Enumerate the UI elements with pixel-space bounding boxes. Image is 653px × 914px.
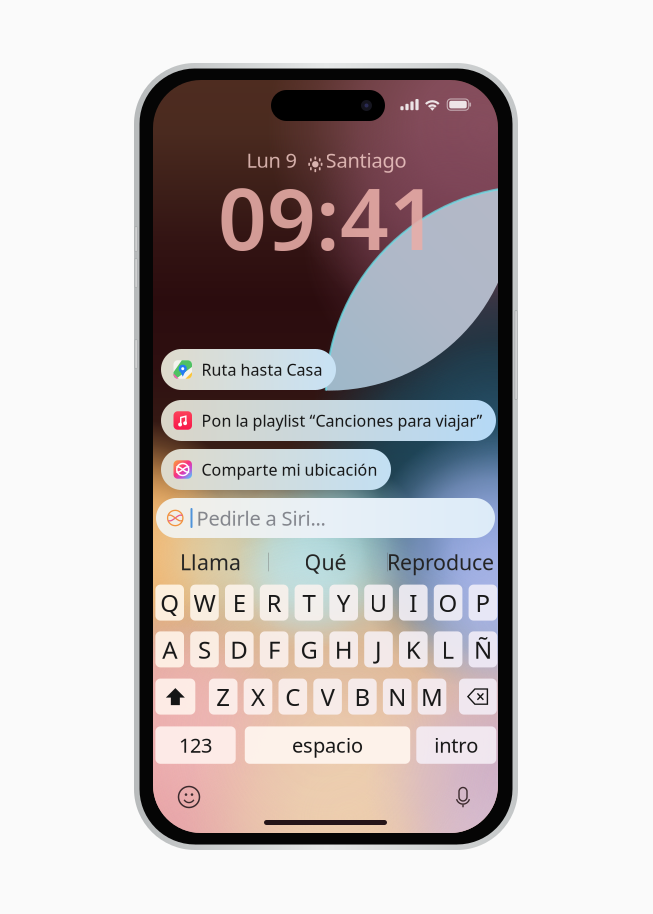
- staticText: 09:41: [218, 160, 438, 274]
- staticText: A: [162, 633, 177, 665]
- staticText: N: [388, 681, 406, 713]
- staticText: Ruta hasta Casa: [201, 359, 322, 380]
- staticText: Reproduce: [387, 548, 494, 576]
- staticText: 123: [179, 732, 212, 758]
- button[interactable]: F: [260, 631, 288, 667]
- staticText: espacio: [292, 732, 363, 758]
- button[interactable]: intro: [416, 726, 496, 764]
- staticText: Pedirle a Siri...: [196, 505, 325, 531]
- staticText: I: [409, 587, 417, 619]
- button[interactable]: Reproduce: [383, 545, 498, 579]
- button[interactable]: B: [348, 679, 377, 715]
- staticText: Qué: [304, 548, 346, 576]
- button[interactable]: Emoji keyboard: [178, 786, 200, 808]
- staticText: Lun 9: [246, 147, 296, 173]
- staticText: P: [475, 587, 490, 619]
- button[interactable]: A: [155, 631, 184, 667]
- button[interactable]: P: [469, 585, 497, 621]
- staticText: O: [439, 587, 458, 619]
- button[interactable]: C: [278, 679, 307, 715]
- staticText: V: [321, 681, 335, 713]
- staticText: Pon la playlist “Canciones para viajar”: [201, 410, 482, 431]
- button[interactable]: T: [295, 585, 323, 621]
- button[interactable]: D: [225, 631, 254, 667]
- staticText: B: [354, 681, 370, 713]
- button[interactable]: Ñ: [469, 631, 497, 667]
- button[interactable]: Delete: [459, 679, 497, 715]
- staticText: C: [285, 681, 300, 713]
- staticText: Llama: [180, 548, 241, 576]
- staticText: Ñ: [474, 633, 492, 665]
- button[interactable]: Shift: [155, 679, 195, 715]
- button[interactable]: espacio: [245, 726, 410, 764]
- button[interactable]: O: [434, 585, 462, 621]
- button[interactable]: Dictation: [452, 785, 474, 809]
- button[interactable]: Q: [155, 585, 184, 621]
- button[interactable]: R: [260, 585, 288, 621]
- staticText: U: [369, 587, 387, 619]
- button[interactable]: H: [329, 631, 358, 667]
- staticText: Q: [160, 587, 179, 619]
- staticText: J: [375, 633, 382, 665]
- button[interactable]: Z: [209, 679, 237, 715]
- button[interactable]: K: [399, 631, 428, 667]
- button[interactable]: S: [190, 631, 219, 667]
- button[interactable]: Y: [329, 585, 358, 621]
- button[interactable]: I: [399, 585, 428, 621]
- button[interactable]: Ruta hasta Casa: [161, 349, 336, 390]
- staticText: Comparte mi ubicación: [201, 459, 377, 480]
- staticText: X: [251, 681, 265, 713]
- staticText: M: [421, 681, 443, 713]
- staticText: intro: [434, 732, 478, 758]
- button[interactable]: V: [313, 679, 342, 715]
- button[interactable]: Pon la playlist “Canciones para viajar”: [161, 400, 496, 441]
- staticText: D: [230, 633, 248, 665]
- staticText: T: [302, 587, 315, 619]
- button[interactable]: N: [383, 679, 411, 715]
- button[interactable]: Qué: [268, 545, 383, 579]
- button[interactable]: M: [418, 679, 446, 715]
- button[interactable]: Pedirle a Siri...: [156, 498, 495, 538]
- staticText: Z: [216, 681, 230, 713]
- staticText: S: [198, 633, 211, 665]
- button[interactable]: J: [364, 631, 393, 667]
- staticText: H: [335, 633, 353, 665]
- button[interactable]: W: [190, 585, 219, 621]
- button[interactable]: E: [225, 585, 254, 621]
- button[interactable]: G: [295, 631, 323, 667]
- button[interactable]: 123: [155, 726, 236, 764]
- staticText: G: [300, 633, 317, 665]
- staticText: Santiago: [325, 147, 406, 173]
- button[interactable]: X: [244, 679, 272, 715]
- button[interactable]: Comparte mi ubicación: [161, 449, 391, 490]
- button[interactable]: Llama: [153, 545, 268, 579]
- staticText: W: [193, 587, 215, 619]
- staticText: K: [406, 633, 421, 665]
- button[interactable]: L: [434, 631, 462, 667]
- staticText: R: [267, 587, 282, 619]
- staticText: F: [268, 633, 280, 665]
- staticText: Y: [337, 587, 351, 619]
- staticText: L: [442, 633, 455, 665]
- button[interactable]: U: [364, 585, 393, 621]
- staticText: E: [233, 587, 246, 619]
